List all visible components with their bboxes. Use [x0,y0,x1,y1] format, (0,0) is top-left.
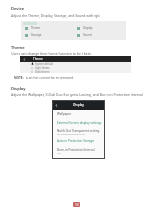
staticText: Wallpaper [57,112,72,116]
staticText: Notifi-Out Transparent setting [57,129,100,133]
staticText: is an her current be to removed. [24,76,74,80]
staticText: Set notifications and all Off [57,133,85,136]
staticText: 10s [57,152,61,155]
staticText: Auto in Protection Storage [57,139,95,143]
staticText: Sound [83,33,92,37]
staticText: Dark theme [35,70,50,73]
staticText: Burn-in Protection Interval [57,148,95,152]
staticText: Storage [31,33,42,37]
staticText: Theme [31,26,41,30]
staticText: Display [73,103,84,107]
staticText: Light theme [35,66,50,70]
staticText: System default [35,62,54,66]
staticText: Theme [33,57,43,61]
staticText: Users can change their home function to … [11,51,92,56]
staticText: Adjust the Theme, Display, Storage, and … [11,13,100,18]
staticText: Device [11,6,25,11]
staticText: NOTE: [14,76,24,80]
staticText: 12 [75,203,79,207]
staticText: External Screen display settings [57,121,102,125]
staticText: Display [11,86,26,91]
staticText: Adjust the Wallpaper, X-Dub Duo Eve gets… [11,92,143,97]
staticText: Theme [11,45,25,50]
staticText: Display [83,26,93,30]
